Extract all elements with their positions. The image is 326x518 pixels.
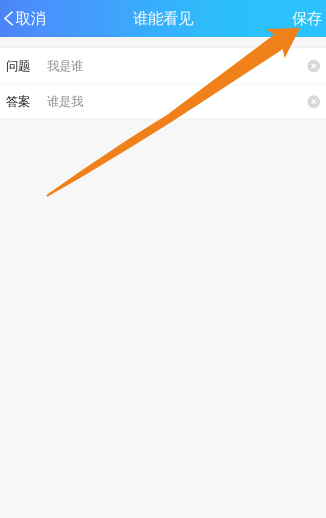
staticText: 答案 <box>6 94 30 109</box>
button[interactable]: 保存 <box>282 0 326 37</box>
staticText: 问题 <box>6 58 30 74</box>
staticText: 我是谁 <box>47 58 83 74</box>
staticText: 谁是我 <box>47 94 83 109</box>
button[interactable]: Clear text <box>300 52 325 80</box>
button[interactable]: 取消 <box>0 0 54 37</box>
staticText: 保存 <box>292 9 322 28</box>
button[interactable]: Clear text <box>300 87 325 116</box>
staticText: 取消 <box>16 9 46 28</box>
staticText: 谁能看见 <box>133 9 193 28</box>
